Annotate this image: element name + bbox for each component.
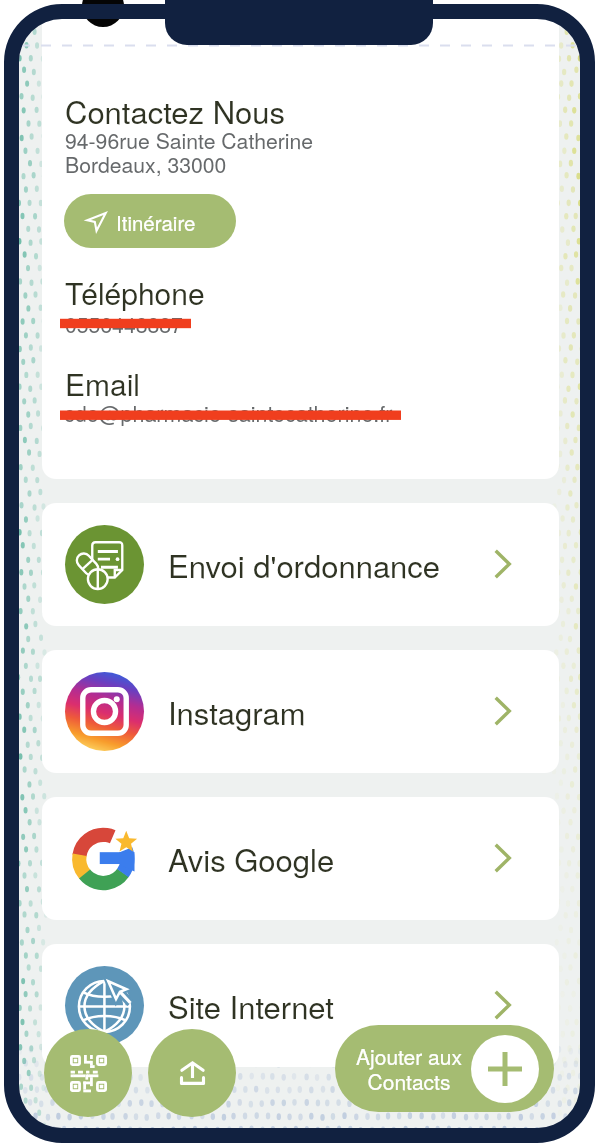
staticText: Site Internet	[168, 983, 334, 1027]
button[interactable]: Instagram	[42, 650, 559, 773]
button[interactable]: Site Internet	[42, 944, 559, 1067]
staticText: Email	[65, 362, 140, 405]
staticText: Contactez Nous	[65, 88, 286, 132]
staticText: 0556448887	[65, 309, 183, 339]
staticText: Instagram	[168, 689, 306, 733]
staticText: Itinéraire	[116, 207, 196, 236]
button[interactable]: Partager	[148, 1029, 236, 1117]
staticText: Téléphone	[65, 271, 205, 314]
staticText: Avis Google	[168, 836, 335, 880]
staticText: Ajouter aux Contacts	[356, 1041, 462, 1096]
button[interactable]: Itinéraire	[64, 194, 236, 248]
button[interactable]: Envoi d'ordonnance	[42, 503, 559, 626]
staticText: Envoi d'ordonnance	[168, 542, 441, 586]
staticText: Bordeaux, 33000	[65, 149, 227, 179]
staticText: cde@pharmacie-saintecatherine.fr	[64, 397, 393, 428]
button[interactable]: Ajouter aux Contacts	[335, 1025, 554, 1112]
staticText: 94-96rue Sainte Catherine	[65, 125, 314, 155]
button[interactable]: Avis Google	[42, 797, 559, 920]
button[interactable]: Afficher le QR code	[44, 1029, 132, 1117]
